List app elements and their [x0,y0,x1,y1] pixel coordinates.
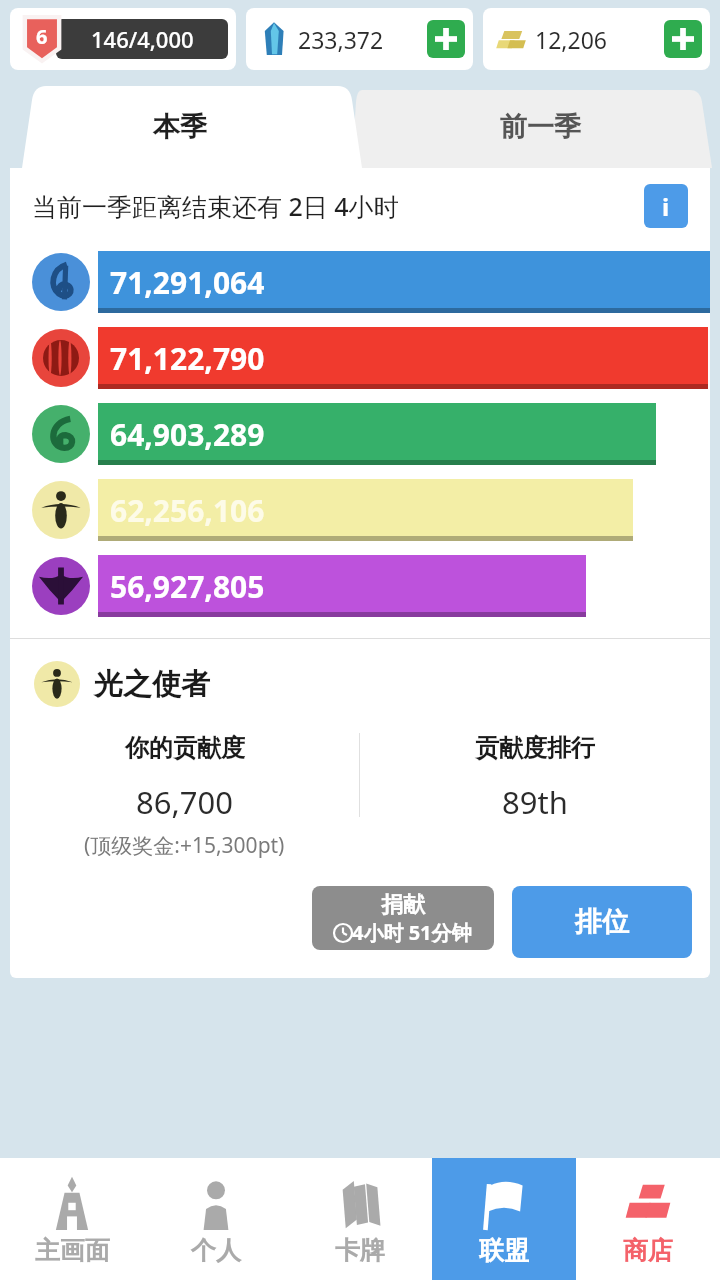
staticText: 86,700 [136,781,233,823]
staticText: 62,256,106 [110,490,265,531]
staticText: i [662,190,670,223]
staticText: 捐献 [381,891,425,919]
button[interactable]: Add [427,20,465,58]
button[interactable]: 主画面 [0,1158,144,1280]
button[interactable]: 卡牌 [288,1158,432,1280]
staticText: 商店 [623,1235,673,1266]
button[interactable]: 联盟 [432,1158,576,1280]
staticText: 56,927,805 [110,566,265,607]
button[interactable]: Add [664,20,702,58]
button[interactable]: 71,122,790 [10,320,710,396]
staticText: 当前一季距离结束还有 2日 4小时 [32,189,644,223]
staticText: 个人 [191,1235,241,1266]
staticText: 233,372 [298,24,423,55]
button[interactable]: 71,291,064 [10,244,710,320]
staticText: 4小时 51分钟 [352,919,472,946]
staticText: 71,291,064 [110,262,265,303]
staticText: 本季 [153,110,207,144]
staticText: 71,122,790 [110,338,265,379]
staticText: 卡牌 [335,1235,385,1266]
staticText: 146/4,000 [91,24,194,54]
staticText: 6 [36,23,48,50]
staticText: 12,206 [535,24,660,55]
button[interactable]: Gold 12,206 [483,8,710,70]
button[interactable]: 个人 [144,1158,288,1280]
button[interactable]: Gems 233,372 [246,8,473,70]
button[interactable]: 64,903,289 [10,396,710,472]
button[interactable]: 前一季 [360,86,720,168]
staticText: 前一季 [500,110,581,144]
staticText: 联盟 [479,1235,529,1266]
button[interactable]: 56,927,805 [10,548,710,624]
button[interactable]: 本季 [0,86,360,168]
button[interactable]: Info [644,184,688,228]
staticText: 89th [502,781,568,823]
staticText: (顶级奖金:+15,300pt) [84,831,285,860]
staticText: 贡献度排行 [475,733,595,763]
staticText: 光之使者 [94,666,210,703]
staticText: 64,903,289 [110,414,265,455]
button[interactable]: 62,256,106 [10,472,710,548]
button[interactable]: 捐献 [312,886,494,950]
staticText: 主画面 [35,1235,110,1266]
staticText: 你的贡献度 [125,733,245,763]
staticText: 排位 [575,905,629,939]
button[interactable]: 商店 [576,1158,720,1280]
button[interactable]: 排位 [512,886,692,958]
button[interactable]: Experience 146 of 4000 [10,8,236,70]
